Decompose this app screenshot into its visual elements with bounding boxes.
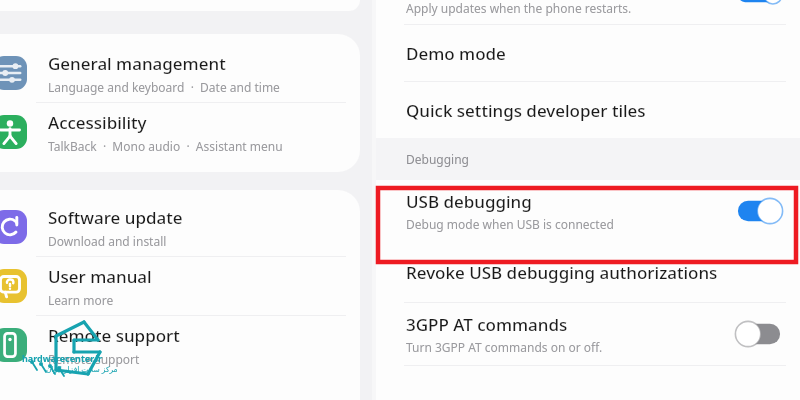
- button[interactable]: USB debugging: [732, 194, 786, 228]
- staticText: Learn more: [48, 292, 114, 308]
- staticText: Revoke USB debugging authorizations: [406, 261, 718, 284]
- staticText: Apply updates when the phone restarts.: [406, 0, 632, 16]
- staticText: hardwarecenter.ir: [22, 352, 103, 364]
- button[interactable]: Quick settings developer tiles: [376, 82, 800, 138]
- staticText: USB debugging: [406, 190, 532, 213]
- staticText: Debugging: [406, 151, 469, 167]
- button[interactable]: Accessibility: [0, 103, 360, 161]
- staticText: Remote support: [48, 351, 140, 367]
- button[interactable]: Revoke USB debugging authorizations: [376, 242, 800, 302]
- staticText: Accessibility: [48, 111, 147, 134]
- staticText: Download and install: [48, 233, 167, 249]
- staticText: Debug mode when USB is connected: [406, 216, 614, 232]
- staticText: Quick settings developer tiles: [406, 99, 646, 122]
- button[interactable]: Software update: [0, 198, 360, 256]
- staticText: User manual: [48, 265, 152, 288]
- staticText: Software update: [48, 206, 183, 229]
- staticText: Language and keyboard · Date and time: [48, 79, 280, 95]
- button[interactable]: Apply updates: [732, 0, 786, 7]
- staticText: Demo mode: [406, 42, 506, 65]
- staticText: مرکز سخت افزار ایران: [46, 364, 118, 374]
- button[interactable]: Demo mode: [376, 25, 800, 81]
- button[interactable]: General management: [0, 44, 360, 102]
- button[interactable]: 3GPP AT commands: [376, 303, 800, 365]
- staticText: General management: [48, 52, 226, 75]
- staticText: Remote support: [48, 324, 180, 347]
- staticText: 3GPP AT commands: [406, 313, 568, 336]
- staticText: Turn 3GPP AT commands on or off.: [406, 339, 603, 355]
- button[interactable]: Remote support: [0, 316, 360, 374]
- button[interactable]: 3GPP AT commands: [732, 317, 786, 351]
- staticText: TalkBack · Mono audio · Assistant menu: [48, 138, 283, 154]
- button[interactable]: Apply updates when the phone restarts.: [376, 0, 800, 24]
- button[interactable]: User manual: [0, 257, 360, 315]
- button[interactable]: USB debugging: [376, 180, 800, 242]
